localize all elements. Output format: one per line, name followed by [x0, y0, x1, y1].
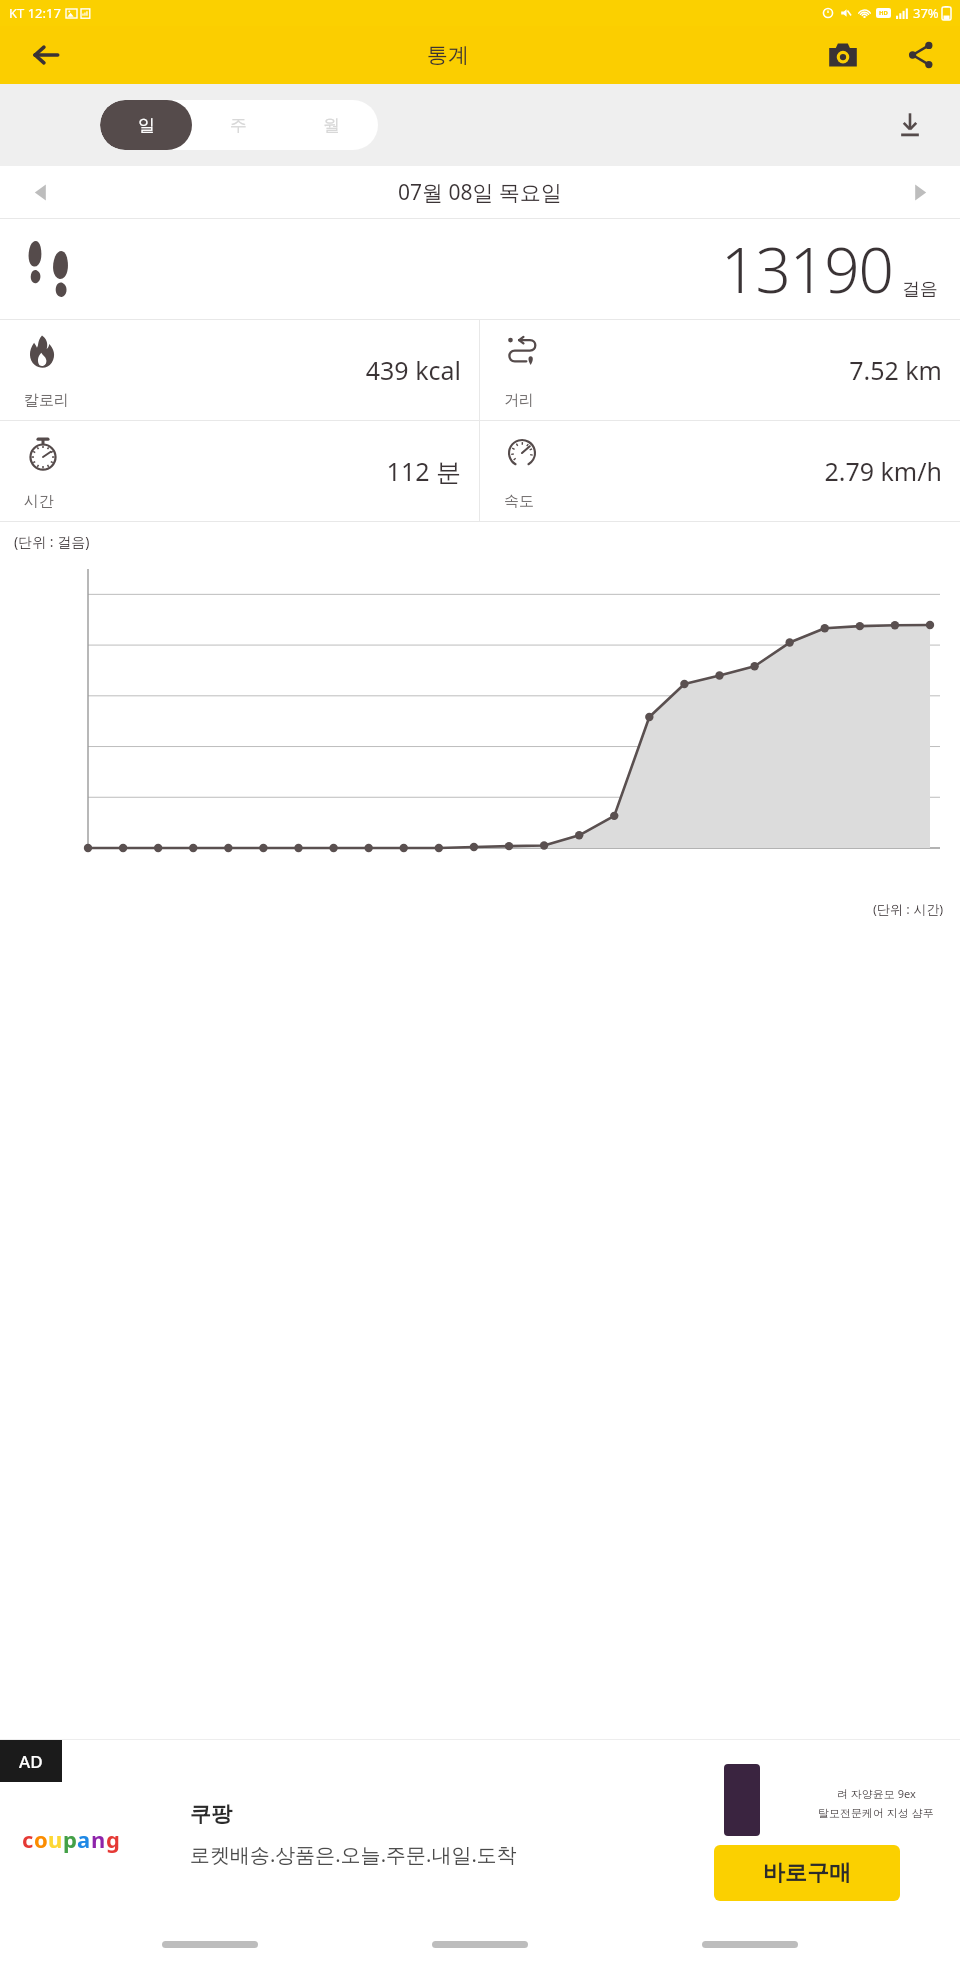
button[interactable]: 바로구매 [714, 1845, 900, 1901]
staticText: 걸음 [902, 278, 938, 301]
staticText: n [91, 1824, 106, 1854]
staticText: u [48, 1824, 63, 1854]
staticText: 바로구매 [763, 1859, 851, 1887]
button[interactable]: 주 [192, 100, 285, 150]
staticText: 일 [138, 115, 155, 136]
button[interactable]: 월 [285, 100, 378, 150]
staticText: 칼로리 [24, 391, 69, 410]
staticText: (단위 : 걸음) [14, 532, 90, 551]
staticText: 탈모전문케어 지성 샴푸 [818, 1805, 934, 1820]
staticText: 거리 [504, 391, 534, 410]
staticText: 속도 [504, 492, 534, 511]
staticText: o [34, 1824, 48, 1854]
staticText: 112 분 [386, 454, 461, 488]
staticText: 려 자양윤모 9ex [837, 1786, 916, 1801]
button[interactable]: Download [880, 95, 940, 155]
staticText: 월 [323, 115, 340, 136]
staticText: 쿠팡 [190, 1801, 232, 1827]
button[interactable]: Next day [880, 166, 960, 218]
button[interactable]: Camera [804, 26, 882, 84]
button[interactable]: 거리 [480, 320, 960, 420]
staticText: 07월 08일 목요일 [398, 178, 562, 207]
button[interactable]: 칼로리 [0, 320, 479, 420]
button[interactable]: AD [0, 1740, 960, 1915]
button[interactable]: Share [882, 26, 960, 84]
staticText: 로켓배송.상품은.오늘.주문.내일.도착 [190, 1841, 517, 1868]
button[interactable]: Navigation [690, 1924, 810, 1964]
staticText: 시간 [24, 492, 54, 511]
staticText: 2.79 km/h [824, 454, 942, 488]
staticText: 7.52 km [849, 353, 942, 387]
staticText: 통계 [427, 42, 469, 68]
button[interactable]: 일 [100, 100, 192, 150]
staticText: 주 [230, 115, 247, 136]
staticText: 439 kcal [365, 353, 461, 387]
staticText: 37% [913, 4, 939, 22]
staticText: AD [19, 1750, 43, 1773]
button[interactable]: Previous day [0, 166, 80, 218]
staticText: c [22, 1824, 34, 1854]
button[interactable]: Back [0, 26, 92, 84]
button[interactable]: Navigation [420, 1924, 540, 1964]
staticText: 13190 [721, 227, 894, 311]
button[interactable]: 시간 [0, 421, 479, 521]
button[interactable]: Navigation [150, 1924, 270, 1964]
staticText: HD [879, 9, 888, 17]
staticText: g [106, 1824, 120, 1854]
staticText: (단위 : 시간) [873, 900, 944, 918]
staticText: p [63, 1824, 77, 1854]
staticText: KT 12:17 [9, 4, 61, 22]
staticText: a [77, 1824, 91, 1854]
button[interactable]: 13190 [0, 219, 960, 319]
button[interactable]: 속도 [480, 421, 960, 521]
